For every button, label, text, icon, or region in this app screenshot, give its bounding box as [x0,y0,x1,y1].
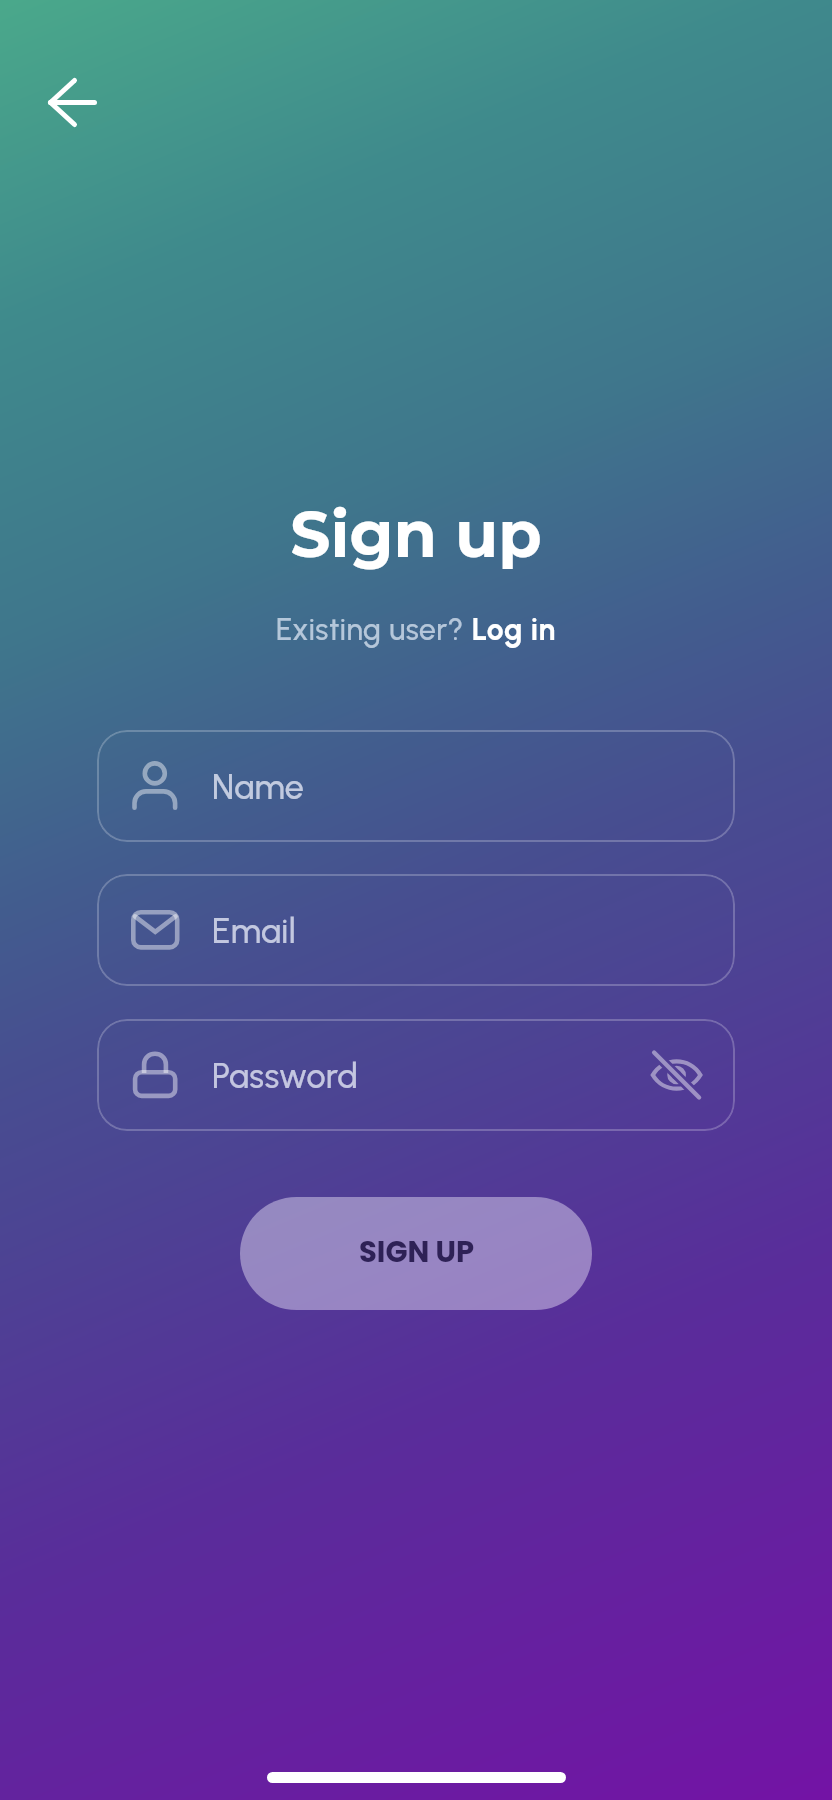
button[interactable]: Show password [644,1042,710,1108]
staticText: Email [212,911,297,952]
staticText: Existing user? Log in [276,611,556,647]
staticText: Name [212,767,305,808]
button[interactable]: SIGN UP [240,1197,592,1310]
button[interactable]: Name [97,730,735,842]
button[interactable]: Email [97,874,735,986]
staticText: Password [212,1056,359,1097]
button[interactable]: Password [97,1019,735,1131]
button[interactable]: Existing user? Log in [276,611,556,647]
staticText: SIGN UP [359,1232,474,1273]
staticText: Sign up [290,496,542,573]
button[interactable]: Back [24,54,120,150]
